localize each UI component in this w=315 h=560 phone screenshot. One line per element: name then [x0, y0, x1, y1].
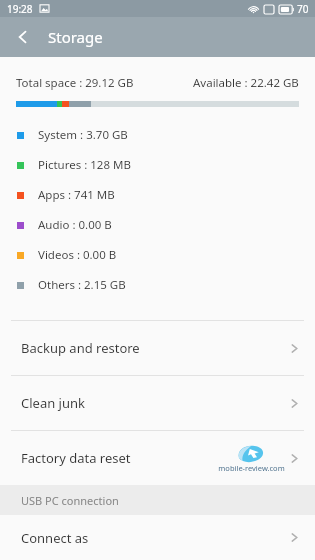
staticText: System : 3.70 GB	[38, 127, 128, 143]
staticText: Total space : 29.12 GB	[16, 75, 134, 91]
button[interactable]: Connect as	[0, 515, 315, 560]
staticText: Audio : 0.00 B	[38, 217, 112, 233]
staticText: Backup and restore	[21, 339, 140, 357]
staticText: Apps : 741 MB	[38, 187, 115, 203]
staticText: Videos : 0.00 B	[38, 247, 117, 263]
staticText: USB PC connection	[21, 493, 119, 508]
staticText: 19:28	[7, 2, 33, 16]
button[interactable]: Factory data reset	[0, 431, 315, 485]
button[interactable]: Back	[6, 20, 40, 54]
staticText: Available : 22.42 GB	[193, 75, 299, 91]
staticText: Others : 2.15 GB	[38, 277, 126, 293]
button[interactable]: Clean junk	[0, 376, 315, 430]
staticText: Storage	[48, 27, 103, 47]
staticText: Pictures : 128 MB	[38, 157, 131, 173]
staticText: Factory data reset	[21, 449, 131, 467]
button[interactable]: Backup and restore	[0, 321, 315, 375]
staticText: Clean junk	[21, 394, 85, 412]
staticText: mobile-review.com	[218, 463, 285, 473]
staticText: Connect as	[21, 529, 89, 547]
staticText: 70	[297, 2, 309, 16]
